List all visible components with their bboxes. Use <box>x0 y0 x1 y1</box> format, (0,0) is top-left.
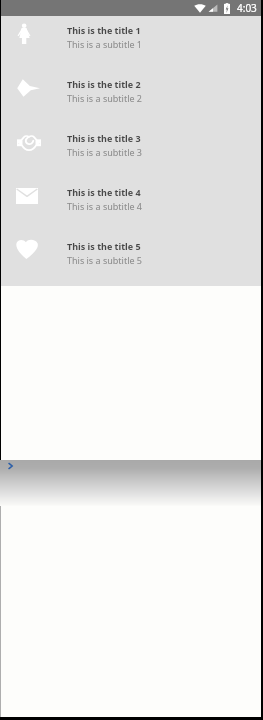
staticText: This is the title 2 <box>67 78 141 90</box>
staticText: This is a subtitle 2 <box>67 92 143 104</box>
staticText: This is the title 4 <box>67 186 141 198</box>
button[interactable]: This is the title 4 <box>1 178 261 232</box>
button[interactable]: Expand <box>3 459 17 473</box>
staticText: This is the title 1 <box>67 24 141 36</box>
staticText: This is the title 3 <box>67 132 141 144</box>
button[interactable]: This is the title 3 <box>1 124 261 178</box>
staticText: This is a subtitle 3 <box>67 146 143 158</box>
staticText: This is a subtitle 4 <box>67 200 143 212</box>
button[interactable]: This is the title 5 <box>1 232 261 286</box>
button[interactable]: This is the title 2 <box>1 70 261 124</box>
button[interactable]: This is the title 1 <box>1 16 261 70</box>
staticText: This is a subtitle 5 <box>67 254 143 266</box>
staticText: 4:03 <box>237 1 257 15</box>
staticText: This is the title 5 <box>67 240 141 252</box>
staticText: This is a subtitle 1 <box>67 38 143 50</box>
